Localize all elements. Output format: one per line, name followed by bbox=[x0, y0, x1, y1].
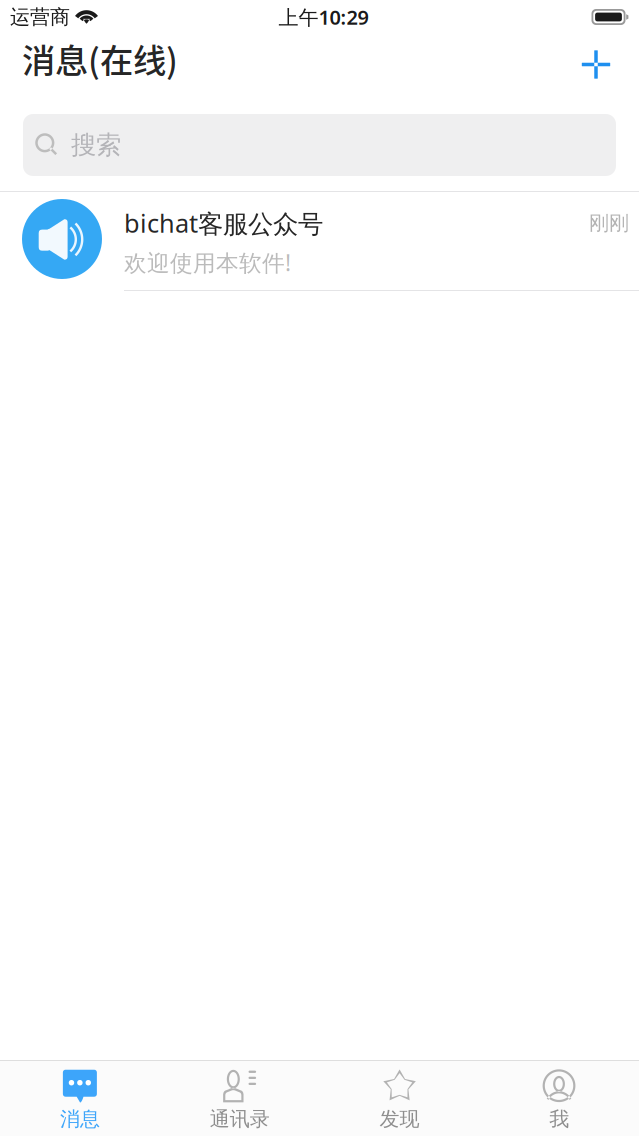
button[interactable]: bichat客服公众号 bbox=[0, 192, 639, 291]
staticText: bichat客服公众号 bbox=[124, 206, 323, 240]
button[interactable]: New message bbox=[583, 44, 617, 78]
staticText: 搜索 bbox=[71, 129, 121, 160]
staticText: 通讯录 bbox=[210, 1107, 270, 1131]
staticText: 刚刚 bbox=[589, 211, 629, 235]
staticText: 上午10:29 bbox=[278, 4, 368, 30]
button[interactable]: 发现 bbox=[319, 1061, 479, 1136]
staticText: 消息 bbox=[60, 1107, 100, 1131]
staticText: 欢迎使用本软件! bbox=[124, 247, 291, 277]
button[interactable]: 搜索 bbox=[23, 114, 616, 176]
staticText: 发现 bbox=[379, 1107, 419, 1131]
staticText: 我 bbox=[549, 1107, 569, 1131]
button[interactable]: 通讯录 bbox=[160, 1061, 320, 1136]
button[interactable]: 我 bbox=[479, 1061, 639, 1136]
staticText: 消息(在线) bbox=[22, 34, 178, 83]
staticText: 运营商 bbox=[10, 5, 70, 29]
button[interactable]: 消息 bbox=[0, 1061, 160, 1136]
